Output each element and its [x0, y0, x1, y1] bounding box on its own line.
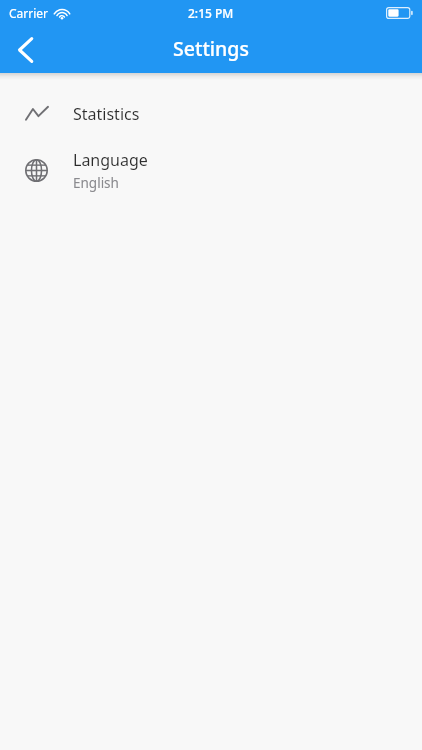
staticText: Carrier: [9, 5, 49, 21]
button[interactable]: Back: [0, 26, 52, 73]
staticText: English: [73, 174, 119, 192]
staticText: Statistics: [73, 103, 140, 125]
button[interactable]: Statistics: [0, 89, 422, 139]
staticText: Settings: [173, 35, 249, 62]
staticText: 2:15 PM: [188, 5, 234, 21]
staticText: Language: [73, 149, 148, 171]
button[interactable]: Language: [0, 139, 422, 201]
